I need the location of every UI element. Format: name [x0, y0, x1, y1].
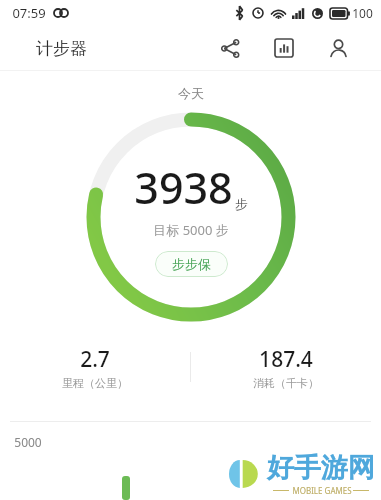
button[interactable]: Statistics — [267, 31, 301, 65]
staticText: 187.4 — [259, 345, 313, 374]
button[interactable]: Share — [213, 31, 247, 65]
staticText: 5000 — [14, 434, 42, 450]
staticText: 好手游网 — [267, 451, 375, 485]
staticText: 里程（公里） — [62, 376, 128, 390]
button[interactable]: 步步保 — [155, 251, 228, 277]
button[interactable]: 2.7 — [0, 345, 190, 390]
staticText: 100 — [352, 5, 373, 21]
staticText: 计步器 — [36, 38, 87, 59]
staticText: MOBILE GAMES — [289, 485, 353, 496]
staticText: 07:59 — [12, 4, 46, 22]
staticText: 3938 — [134, 158, 233, 217]
staticText: 消耗（千卡） — [253, 376, 319, 390]
staticText: 步 — [235, 196, 248, 212]
staticText: 步步保 — [172, 256, 211, 272]
button[interactable]: 187.4 — [191, 345, 381, 390]
staticText: 今天 — [178, 85, 204, 101]
button[interactable]: Profile — [321, 31, 355, 65]
staticText: 2.7 — [80, 345, 110, 374]
staticText: 目标 5000 步 — [153, 221, 229, 239]
